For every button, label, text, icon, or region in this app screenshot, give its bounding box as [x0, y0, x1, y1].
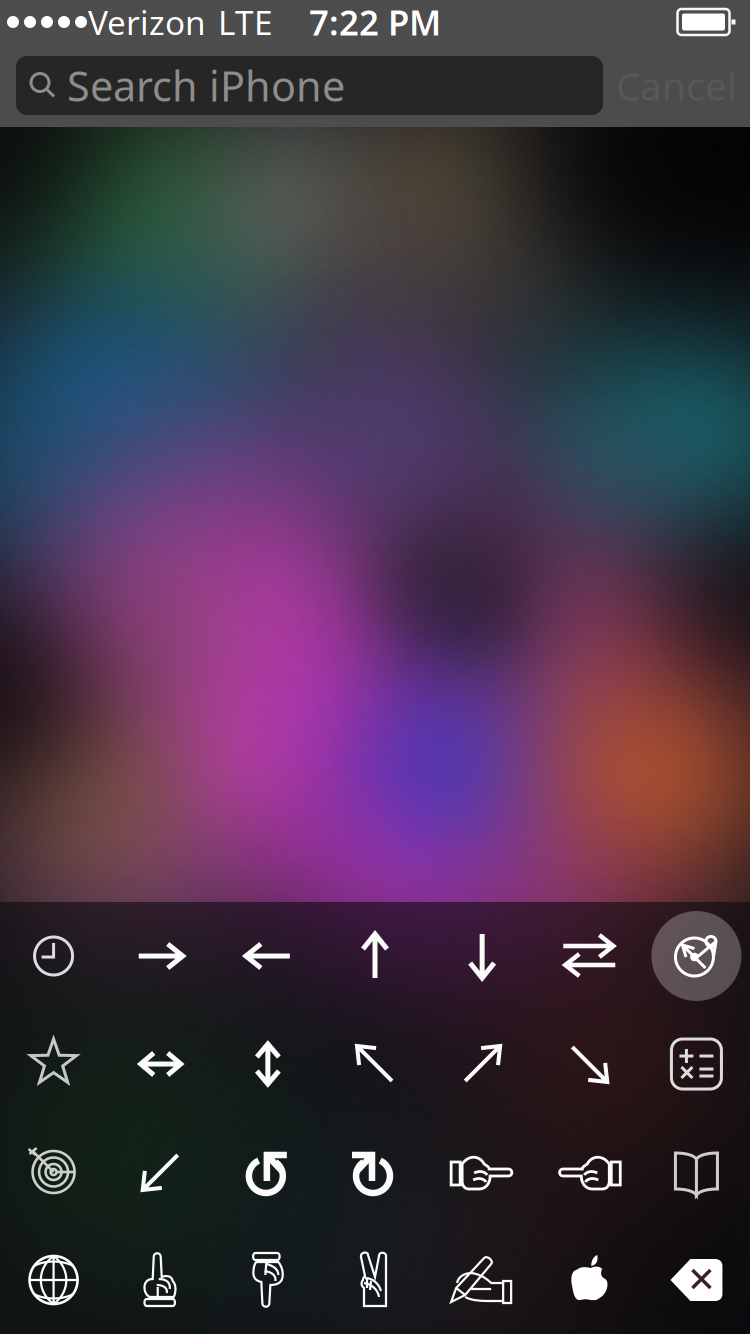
button[interactable]: Index pointing up: [107, 1226, 214, 1334]
button[interactable]: Victory hand: [321, 1226, 428, 1334]
button[interactable]: Down arrow: [429, 902, 536, 1010]
button[interactable]: Cancel: [603, 56, 750, 115]
button[interactable]: Up arrow: [321, 902, 428, 1010]
button[interactable]: Right arrow: [107, 902, 214, 1010]
button[interactable]: Apple logo: [536, 1226, 643, 1334]
button[interactable]: Down left arrow: [107, 1118, 214, 1226]
button[interactable]: Rotate left: [214, 1118, 321, 1226]
button[interactable]: Pointing left: [536, 1118, 643, 1226]
button[interactable]: Left right arrow: [107, 1010, 214, 1118]
button[interactable]: Stopwatch: [643, 902, 750, 1010]
staticText: Cancel: [616, 60, 737, 111]
button[interactable]: Up right arrow: [429, 1010, 536, 1118]
button[interactable]: Down right arrow: [536, 1010, 643, 1118]
button[interactable]: Math symbols: [643, 1010, 750, 1118]
button[interactable]: Writing hand: [429, 1226, 536, 1334]
staticText: Search iPhone: [67, 58, 345, 113]
staticText: LTE: [218, 0, 273, 44]
button[interactable]: Delete: [643, 1226, 750, 1334]
button[interactable]: Pointing right: [429, 1118, 536, 1226]
button[interactable]: Globe: [0, 1226, 107, 1334]
button[interactable]: Up left arrow: [321, 1010, 428, 1118]
button[interactable]: Target: [0, 1118, 107, 1226]
button[interactable]: Index pointing down: [214, 1226, 321, 1334]
button[interactable]: Rotate right: [321, 1118, 428, 1226]
button[interactable]: Swap arrows: [536, 902, 643, 1010]
staticText: Verizon: [88, 0, 206, 44]
button[interactable]: Clock: [0, 902, 107, 1010]
button[interactable]: Search iPhone: [16, 56, 603, 115]
button[interactable]: Open book: [643, 1118, 750, 1226]
button[interactable]: Left arrow: [214, 902, 321, 1010]
staticText: 7:22 PM: [309, 0, 441, 45]
button[interactable]: Up down arrow: [214, 1010, 321, 1118]
button[interactable]: Star: [0, 1010, 107, 1118]
